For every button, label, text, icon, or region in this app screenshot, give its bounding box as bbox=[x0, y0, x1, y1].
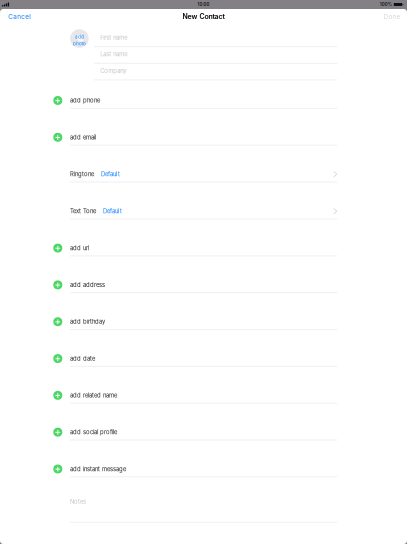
staticText: First name bbox=[100, 34, 127, 41]
staticText: add birthday bbox=[70, 318, 105, 325]
staticText: add date bbox=[70, 355, 95, 362]
button[interactable]: add email bbox=[0, 109, 407, 145]
staticText: add social profile bbox=[70, 429, 117, 436]
button[interactable]: add instant message bbox=[0, 440, 407, 477]
staticText: 100% bbox=[380, 2, 392, 7]
staticText: add phone bbox=[70, 97, 100, 104]
staticText: photo bbox=[73, 41, 86, 46]
staticText: add email bbox=[70, 134, 96, 141]
button[interactable]: add address bbox=[0, 256, 407, 293]
staticText: Default bbox=[101, 171, 120, 178]
staticText: add address bbox=[70, 281, 105, 288]
staticText: add bbox=[75, 34, 84, 40]
staticText: Cancel bbox=[8, 13, 31, 20]
button[interactable]: add date bbox=[0, 330, 407, 367]
button[interactable]: First name bbox=[0, 30, 407, 47]
button[interactable]: Text Tone bbox=[0, 182, 407, 219]
button[interactable]: Done bbox=[375, 8, 407, 25]
staticText: Last name bbox=[100, 51, 127, 58]
button[interactable]: Add photo bbox=[70, 29, 89, 48]
staticText: Text Tone bbox=[70, 208, 96, 215]
button[interactable]: Cancel bbox=[0, 8, 39, 25]
staticText: add related name bbox=[70, 392, 117, 399]
staticText: Done bbox=[383, 13, 400, 20]
staticText: Ringtone bbox=[70, 171, 94, 178]
button[interactable]: add social profile bbox=[0, 404, 407, 440]
staticText: Notes bbox=[70, 498, 86, 505]
button[interactable]: add related name bbox=[0, 367, 407, 404]
button[interactable]: add url bbox=[0, 219, 407, 256]
staticText: Default bbox=[103, 208, 122, 215]
staticText: 10:00 bbox=[197, 2, 209, 7]
staticText: add url bbox=[70, 244, 89, 252]
staticText: add instant message bbox=[70, 465, 126, 473]
button[interactable]: Company bbox=[0, 64, 407, 80]
button[interactable]: Ringtone bbox=[0, 145, 407, 182]
button[interactable]: add phone bbox=[0, 80, 407, 109]
button[interactable]: add birthday bbox=[0, 293, 407, 330]
staticText: Company bbox=[100, 67, 126, 74]
staticText: New Contact bbox=[182, 12, 224, 21]
button[interactable]: Last name bbox=[0, 47, 407, 64]
